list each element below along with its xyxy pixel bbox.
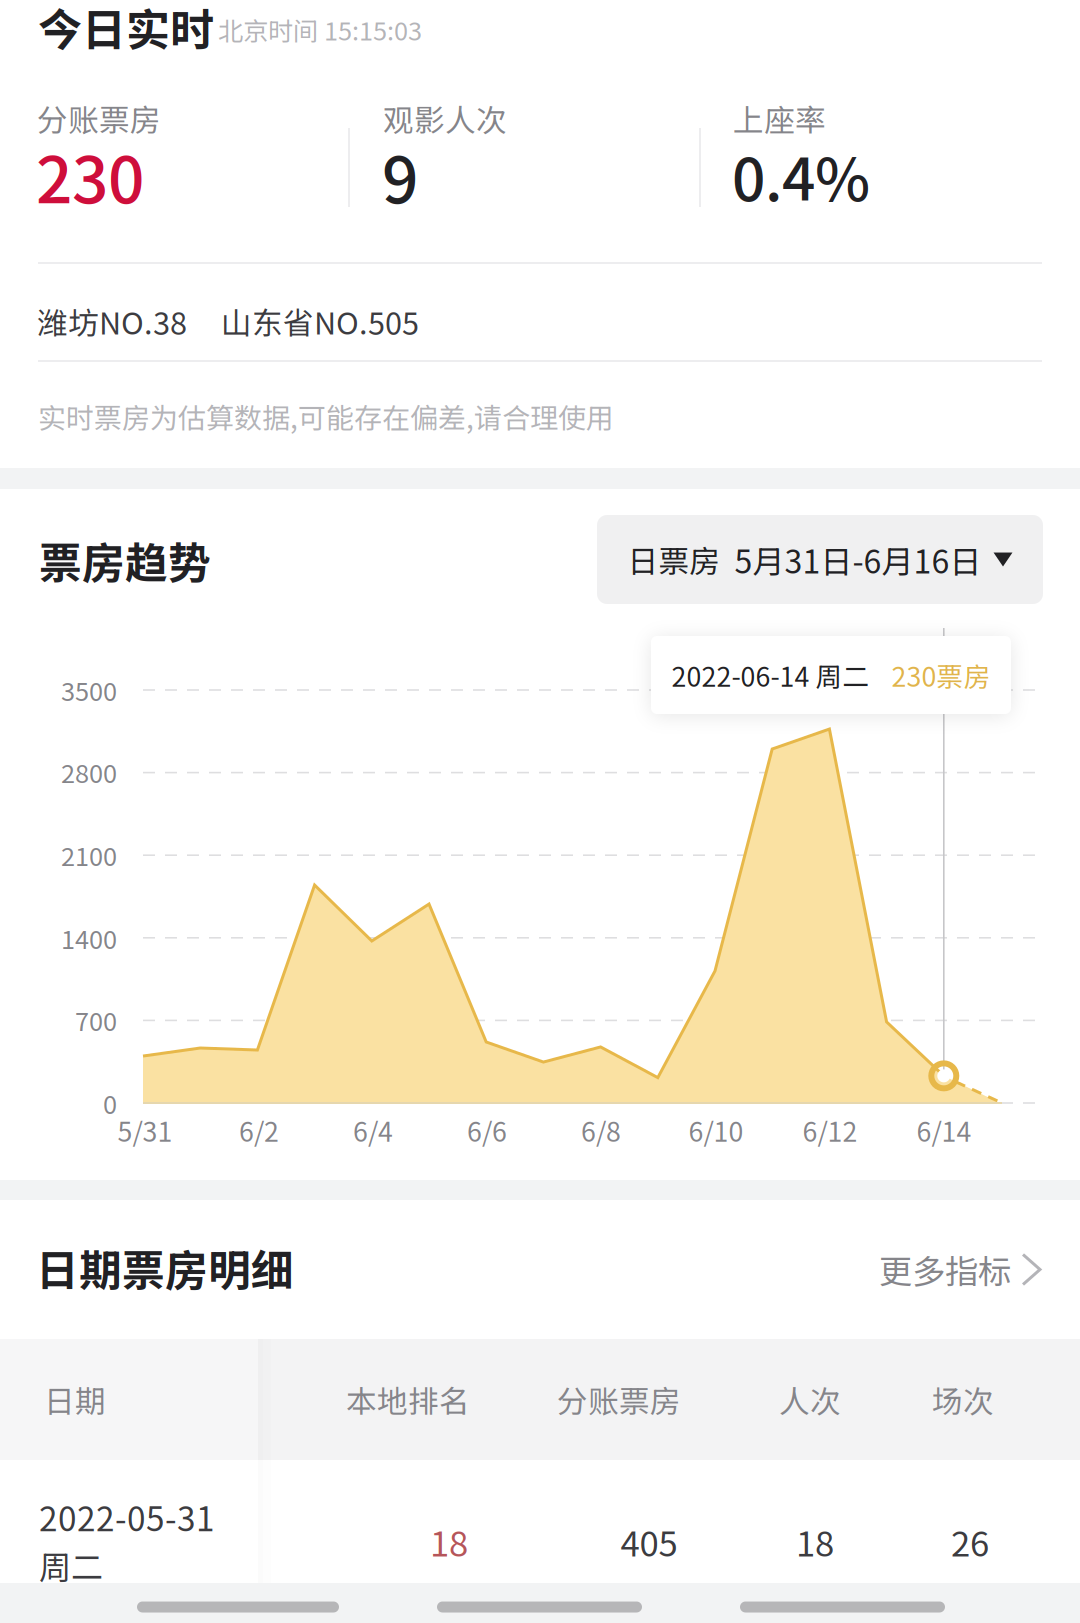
- staticText: 5/31: [117, 1111, 172, 1149]
- staticText: 18: [430, 1516, 468, 1567]
- staticText: 北京时间 15:15:03: [218, 11, 422, 48]
- staticText: 日期票房明细: [36, 1237, 294, 1298]
- staticText: 场次: [932, 1377, 994, 1422]
- staticText: 潍坊NO.38: [37, 299, 187, 343]
- staticText: 6/12: [802, 1111, 857, 1149]
- staticText: 更多指标: [879, 1245, 1011, 1294]
- staticText: 6/2: [239, 1111, 279, 1149]
- staticText: 票房趋势: [39, 529, 211, 591]
- staticText: 分账票房: [37, 96, 161, 140]
- staticText: 0.4%: [732, 133, 870, 218]
- button[interactable]: 日票房: [597, 515, 1043, 604]
- staticText: 405: [620, 1516, 677, 1567]
- staticText: 2022-06-14 周二: [671, 656, 869, 694]
- staticText: 700: [75, 1002, 117, 1038]
- staticText: 周二: [39, 1542, 103, 1588]
- staticText: 3500: [61, 672, 117, 708]
- staticText: 2022-05-31: [39, 1493, 215, 1541]
- staticText: 6/14: [916, 1111, 971, 1149]
- staticText: 230票房: [891, 656, 990, 694]
- staticText: 人次: [779, 1377, 841, 1422]
- staticText: 上座率: [733, 96, 826, 140]
- staticText: 观影人次: [383, 96, 507, 140]
- button[interactable]: 更多指标: [879, 1245, 1040, 1294]
- staticText: 5月31日-6月16日: [734, 536, 981, 583]
- staticText: 2100: [61, 837, 117, 873]
- staticText: 0: [103, 1085, 117, 1121]
- staticText: 26: [951, 1516, 989, 1567]
- staticText: 6/8: [581, 1111, 621, 1149]
- staticText: 本地排名: [346, 1377, 470, 1422]
- staticText: 日期: [44, 1377, 106, 1422]
- staticText: 6/6: [467, 1111, 507, 1149]
- staticText: 1400: [61, 920, 117, 956]
- staticText: 实时票房为估算数据,可能存在偏差,请合理使用: [38, 396, 614, 436]
- staticText: 分账票房: [557, 1377, 681, 1422]
- staticText: 日票房: [627, 537, 720, 582]
- staticText: 6/10: [688, 1111, 743, 1149]
- staticText: 山东省NO.505: [221, 299, 419, 343]
- staticText: 230: [36, 129, 144, 222]
- staticText: 今日实时: [38, 0, 214, 59]
- staticText: 18: [796, 1516, 834, 1567]
- staticText: 9: [382, 129, 418, 222]
- staticText: 2800: [61, 754, 117, 790]
- staticText: 6/4: [353, 1111, 393, 1149]
